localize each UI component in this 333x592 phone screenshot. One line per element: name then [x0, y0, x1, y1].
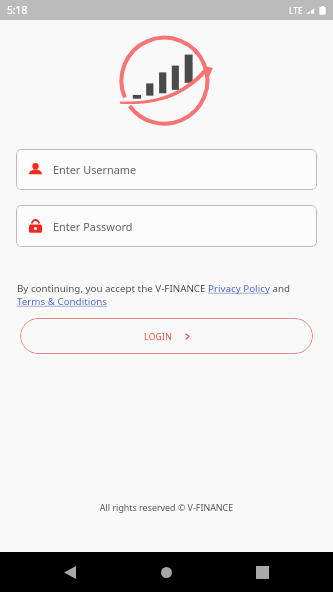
button[interactable]: LOGIN — [20, 318, 313, 354]
button[interactable]: Terms & Conditions — [17, 295, 107, 308]
staticText: LTE — [289, 5, 303, 16]
staticText: Enter Username — [53, 162, 137, 177]
staticText: LOGIN — [144, 331, 173, 342]
button[interactable]: Back — [48, 552, 92, 592]
staticText: Enter Password — [53, 219, 133, 234]
staticText: By continuing, you accept the V-FINANCE … — [17, 282, 290, 295]
button[interactable]: Enter Password — [16, 205, 317, 247]
staticText: All rights reserved © V-FINANCE — [0, 501, 333, 513]
staticText: 5:18 — [7, 3, 28, 17]
button[interactable]: Recents — [240, 552, 284, 592]
button[interactable]: Enter Username — [16, 149, 317, 190]
button[interactable]: Home — [144, 552, 188, 592]
